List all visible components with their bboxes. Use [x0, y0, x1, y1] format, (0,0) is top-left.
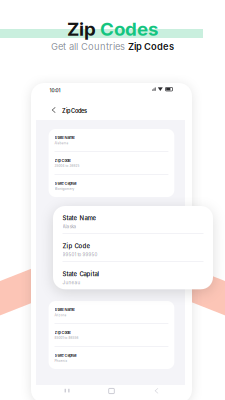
staticText: Alabama [54, 141, 68, 145]
staticText: 35004 to 36925 [54, 164, 79, 168]
staticText: Montgomery [54, 187, 74, 191]
staticText: Codes [100, 18, 158, 40]
staticText: Zip [67, 18, 100, 40]
staticText: State Capital [62, 270, 99, 278]
staticText: Zip Code [62, 242, 90, 250]
staticText: Juneau [62, 280, 80, 285]
staticText: Alaska [62, 224, 76, 229]
staticText: 10:01 [49, 87, 60, 93]
staticText: Zip Code [54, 330, 70, 335]
staticText: State Capital [54, 181, 76, 186]
staticText: Arizona [54, 313, 66, 317]
staticText: Get all Countries [51, 41, 128, 52]
staticText: State Name [54, 307, 74, 312]
staticText: 85001 to 86556 [54, 336, 78, 340]
staticText: State Capital [54, 353, 76, 358]
staticText: Zip Code [54, 158, 70, 163]
staticText: Phoenix [54, 359, 67, 363]
staticText: Zip Codes [62, 108, 87, 114]
staticText: Zip Codes [128, 41, 174, 52]
staticText: State Name [54, 135, 74, 140]
staticText: 99501 to 99950 [62, 252, 97, 257]
staticText: State Name [62, 214, 96, 222]
